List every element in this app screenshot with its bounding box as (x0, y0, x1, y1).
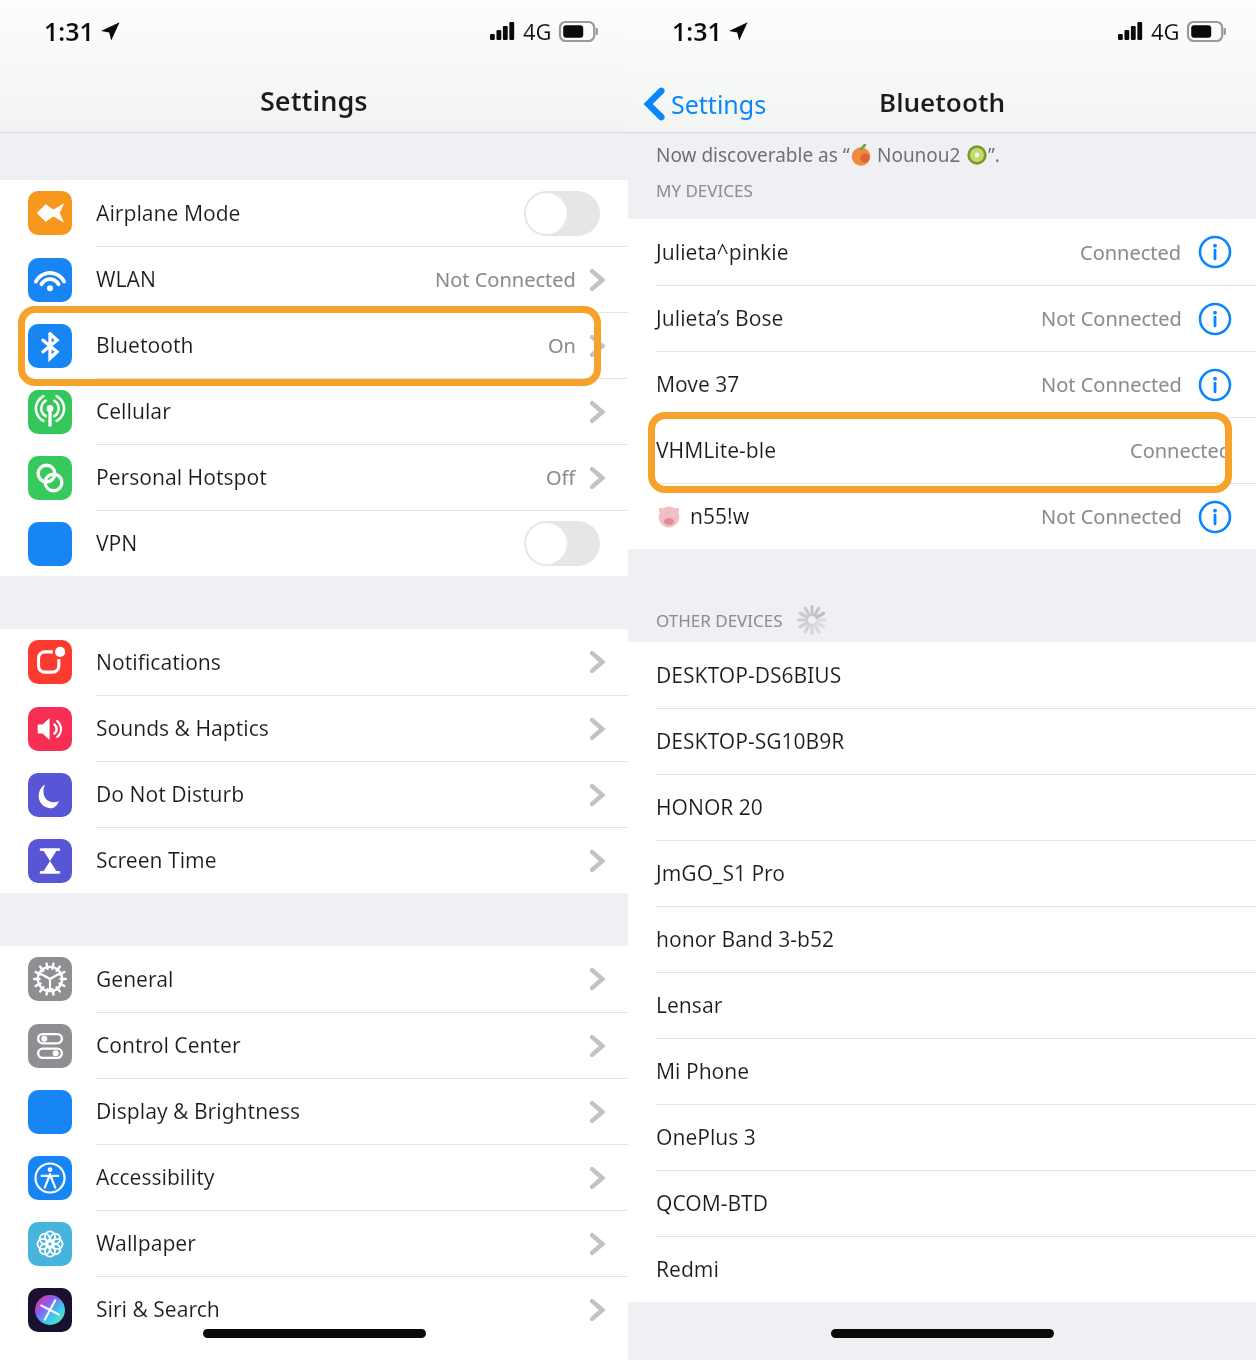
staticText: Sounds & Haptics (96, 714, 269, 743)
staticText: Connected (1130, 437, 1232, 464)
staticText: Control Center (96, 1031, 241, 1060)
staticText: General (96, 965, 174, 994)
staticText: Julieta^pinkie (656, 238, 789, 267)
staticText: Siri & Search (96, 1295, 220, 1324)
staticText: Not Connected (1041, 305, 1182, 332)
staticText: ”. (988, 142, 1000, 168)
staticText: HONOR 20 (656, 793, 763, 822)
staticText: Bluetooth (96, 331, 194, 360)
button[interactable]: WLAN (0, 246, 628, 312)
button[interactable]: Cellular (0, 378, 628, 444)
staticText: 1:31 (44, 14, 94, 48)
staticText: VPN (96, 529, 138, 558)
staticText: Notifications (96, 648, 221, 677)
staticText: Off (546, 464, 576, 491)
staticText: honor Band 3-b52 (656, 925, 834, 954)
button[interactable]: DESKTOP-SG10B9R (628, 708, 1256, 774)
staticText: VHMLite-ble (656, 436, 776, 465)
staticText: Cellular (96, 397, 171, 426)
button[interactable]: Settings (646, 87, 767, 121)
staticText: DESKTOP-SG10B9R (656, 727, 845, 756)
button[interactable]: More info about Move 37 (1198, 368, 1232, 402)
button[interactable]: Wallpaper (0, 1210, 628, 1276)
button[interactable]: VHMLite-ble (628, 417, 1256, 483)
staticText: Settings (260, 82, 368, 119)
button[interactable]: Airplane Mode (0, 180, 628, 246)
staticText: n55!w (690, 502, 750, 531)
staticText: Accessibility (96, 1163, 215, 1192)
staticText: JmGO_S1 Pro (656, 859, 786, 888)
button[interactable]: Screen Time (0, 827, 628, 893)
staticText: Screen Time (96, 846, 217, 875)
staticText: Settings (671, 87, 767, 121)
staticText: Lensar (656, 991, 723, 1020)
button[interactable]: Bluetooth (0, 312, 628, 378)
button[interactable]: General (0, 946, 628, 1012)
button[interactable]: QCOM-BTD (628, 1170, 1256, 1236)
staticText: 1:31 (672, 14, 722, 48)
button[interactable]: More info about Julieta’s Bose (1198, 302, 1232, 336)
staticText: WLAN (96, 265, 156, 294)
staticText: Wallpaper (96, 1229, 196, 1258)
staticText: Julieta’s Bose (656, 304, 784, 333)
button[interactable]: More info about Julieta^pinkie (1198, 235, 1232, 269)
staticText: MY DEVICES (656, 179, 753, 202)
button[interactable]: Julieta’s Bose (628, 285, 1256, 351)
button[interactable]: Mi Phone (628, 1038, 1256, 1104)
staticText: Display & Brightness (96, 1097, 301, 1126)
staticText: Do Not Disturb (96, 780, 245, 809)
button[interactable]: honor Band 3-b52 (628, 906, 1256, 972)
button[interactable]: JmGO_S1 Pro (628, 840, 1256, 906)
button[interactable]: Notifications (0, 629, 628, 695)
staticText: OnePlus 3 (656, 1123, 756, 1152)
staticText: Connected (1080, 239, 1182, 266)
button[interactable]: Airplane Mode toggle (524, 191, 600, 236)
staticText: Redmi (656, 1255, 719, 1284)
staticText: Not Connected (435, 266, 576, 293)
staticText: Move 37 (656, 370, 740, 399)
staticText: Mi Phone (656, 1057, 750, 1086)
staticText: 4G (523, 16, 552, 46)
staticText: Personal Hotspot (96, 463, 267, 492)
staticText: Not Connected (1041, 371, 1182, 398)
staticText: 4G (1151, 16, 1180, 46)
button[interactable]: VPN (0, 510, 628, 576)
button[interactable]: Accessibility (0, 1144, 628, 1210)
button[interactable]: More info about n55!w (1198, 500, 1232, 534)
button[interactable]: Redmi (628, 1236, 1256, 1302)
button[interactable]: HONOR 20 (628, 774, 1256, 840)
button[interactable]: n55!w (628, 483, 1256, 549)
staticText: DESKTOP-DS6BIUS (656, 661, 842, 690)
staticText: OTHER DEVICES (656, 609, 783, 632)
staticText: Now discoverable as “ (656, 142, 850, 168)
button[interactable]: Display & Brightness (0, 1078, 628, 1144)
button[interactable]: DESKTOP-DS6BIUS (628, 642, 1256, 708)
staticText: QCOM-BTD (656, 1189, 769, 1218)
button[interactable]: Lensar (628, 972, 1256, 1038)
button[interactable]: Siri & Search (0, 1276, 628, 1342)
button[interactable]: Do Not Disturb (0, 761, 628, 827)
staticText: Bluetooth (879, 84, 1006, 119)
button[interactable]: Move 37 (628, 351, 1256, 417)
staticText: On (548, 332, 576, 359)
staticText: Not Connected (1041, 503, 1182, 530)
button[interactable]: Control Center (0, 1012, 628, 1078)
button[interactable]: VPN toggle (524, 521, 600, 566)
button[interactable]: Julieta^pinkie (628, 219, 1256, 285)
button[interactable]: Sounds & Haptics (0, 695, 628, 761)
staticText: Nounou2 (872, 142, 966, 168)
button[interactable]: Personal Hotspot (0, 444, 628, 510)
button[interactable]: OnePlus 3 (628, 1104, 1256, 1170)
staticText: Airplane Mode (96, 199, 241, 228)
